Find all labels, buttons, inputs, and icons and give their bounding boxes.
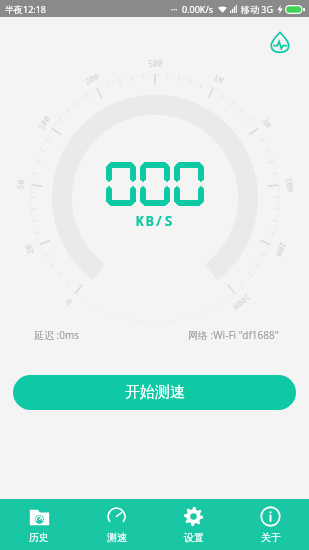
staticText: 10M (284, 176, 297, 193)
staticText: 100 (35, 113, 52, 132)
staticText: 100M (231, 292, 253, 313)
button[interactable]: 开始测速 (13, 375, 296, 410)
staticText: 0 (63, 297, 74, 308)
staticText: 移动 3G (241, 3, 274, 15)
staticText: 关于 (261, 531, 281, 544)
staticText: 测速 (107, 531, 127, 544)
staticText: KB/S (136, 211, 174, 230)
button[interactable]: 测速 (78, 499, 155, 550)
staticText: 3M (260, 115, 274, 130)
button[interactable]: 历史 (0, 499, 78, 550)
staticText: 网络 :Wi-Fi "df1688" (188, 328, 279, 342)
staticText: 设置 (184, 531, 204, 544)
staticText: 20 (22, 243, 36, 256)
staticText: 历史 (29, 531, 49, 544)
button[interactable]: 设置 (155, 499, 232, 550)
button[interactable]: 关于 (232, 499, 309, 550)
staticText: 200 (82, 70, 101, 87)
staticText: 延迟 :0ms (34, 328, 80, 342)
staticText: ··· (171, 4, 178, 15)
staticText: 20M (274, 240, 289, 258)
staticText: 50 (14, 179, 26, 190)
staticText: 半夜12:18 (5, 3, 47, 15)
staticText: 500 (148, 58, 163, 69)
staticText: 1M (212, 71, 226, 86)
staticText: 0.00K/s (182, 3, 214, 15)
staticText: 开始测速 (125, 383, 185, 402)
button[interactable]: Network monitor (265, 27, 295, 57)
